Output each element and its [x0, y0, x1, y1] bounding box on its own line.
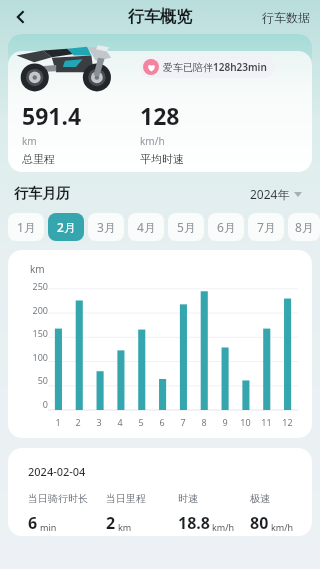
staticText: 80 — [250, 512, 269, 534]
staticText: 5 — [138, 416, 144, 428]
staticText: 2024-02-04 — [28, 464, 86, 479]
staticText: 3 — [96, 416, 102, 428]
staticText: km/h — [212, 521, 235, 533]
staticText: km/h — [271, 521, 294, 533]
staticText: 6 — [28, 512, 38, 534]
staticText: 4 — [117, 416, 123, 428]
staticText: 128 — [140, 100, 180, 131]
button[interactable]: 8月 — [288, 213, 320, 241]
staticText: 50 — [37, 374, 48, 386]
staticText: 当日里程 — [106, 492, 146, 505]
button[interactable]: 爱车已陪伴128h23min — [140, 56, 275, 78]
button[interactable]: 2024-02-04 — [8, 448, 312, 536]
staticText: km/h — [140, 134, 165, 148]
staticText: 591.4 — [22, 100, 82, 131]
staticText: 7 — [180, 416, 186, 428]
staticText: 12 — [282, 416, 293, 428]
staticText: 8月 — [295, 219, 314, 235]
button[interactable]: 2月 — [48, 213, 84, 241]
staticText: 2 — [75, 416, 81, 428]
staticText: 爱车已陪伴128h23min — [163, 60, 267, 74]
staticText: 时速 — [178, 492, 198, 505]
staticText: km — [22, 134, 37, 148]
staticText: 10 — [240, 416, 251, 428]
button[interactable]: 6月 — [208, 213, 244, 241]
staticText: 1 — [55, 416, 61, 428]
staticText: 0 — [42, 398, 48, 410]
button[interactable]: 2024年 — [246, 182, 306, 206]
staticText: 9 — [222, 416, 228, 428]
staticText: 200 — [32, 304, 48, 316]
staticText: 极速 — [250, 492, 270, 505]
staticText: 5月 — [177, 219, 196, 235]
staticText: 100 — [32, 351, 48, 363]
staticText: 18.8 — [178, 512, 210, 534]
staticText: 7月 — [257, 219, 276, 235]
staticText: 2 — [106, 512, 116, 534]
staticText: 2024年 — [250, 186, 290, 202]
button[interactable]: 1月 — [8, 213, 44, 241]
staticText: 行车概览 — [128, 7, 192, 27]
staticText: 平均时速 — [140, 152, 184, 166]
staticText: 3月 — [97, 219, 116, 235]
staticText: km — [30, 262, 45, 276]
staticText: 行车数据 — [262, 10, 310, 25]
staticText: 4月 — [137, 219, 156, 235]
button[interactable]: 行车数据 — [260, 6, 312, 29]
staticText: min — [40, 521, 57, 533]
button[interactable]: 7月 — [248, 213, 284, 241]
staticText: 总里程 — [22, 152, 55, 166]
staticText: 2月 — [57, 219, 76, 235]
button[interactable]: Back — [4, 0, 38, 34]
staticText: 150 — [32, 327, 48, 339]
staticText: 行车月历 — [14, 185, 70, 203]
staticText: 6月 — [217, 219, 236, 235]
button[interactable]: 5月 — [168, 213, 204, 241]
staticText: 当日骑行时长 — [28, 492, 88, 505]
staticText: 6 — [159, 416, 165, 428]
staticText: 8 — [201, 416, 207, 428]
staticText: km — [118, 521, 132, 533]
staticText: 250 — [32, 280, 48, 292]
staticText: 11 — [261, 416, 272, 428]
button[interactable]: 3月 — [88, 213, 124, 241]
button[interactable]: 4月 — [128, 213, 164, 241]
staticText: 1月 — [17, 219, 36, 235]
